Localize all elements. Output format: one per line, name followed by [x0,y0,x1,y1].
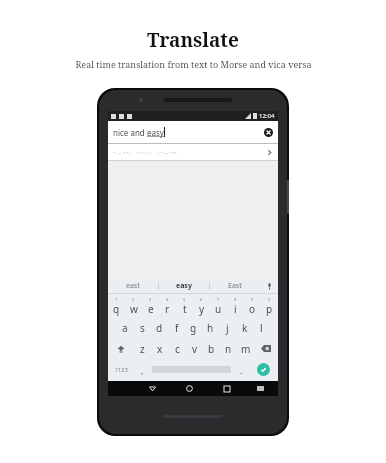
staticText: 4 [166,297,169,302]
button[interactable]: m [237,339,254,358]
staticText: p [266,302,273,316]
staticText: 9 [251,297,254,302]
button[interactable]: 3 [142,296,159,316]
staticText: 6 [200,297,203,302]
staticText: 1 [115,297,118,302]
staticText: 0 [268,297,271,302]
staticText: k [242,321,248,335]
button[interactable]: Home [171,381,208,396]
button[interactable]: z [133,339,151,358]
button[interactable]: x [151,339,169,358]
staticText: i [234,302,237,316]
staticText: g [190,321,197,335]
button[interactable]: j [219,318,236,337]
button[interactable]: easy [159,279,209,293]
button[interactable]: East [210,279,260,293]
staticText: 2 [132,297,135,302]
button[interactable]: 4 [159,296,176,316]
button[interactable]: 0 [261,296,278,316]
button[interactable]: l [253,318,270,337]
button[interactable]: 6 [193,296,210,316]
button[interactable]: Hide keyboard [245,381,275,396]
staticText: East [228,281,242,291]
button[interactable]: h [202,318,219,337]
button[interactable]: east [108,279,158,293]
button[interactable]: ?123 [108,360,134,379]
button[interactable]: d [151,318,168,337]
staticText: easy [176,281,192,291]
button[interactable]: Recent apps [208,381,245,396]
staticText: n [225,342,232,356]
button[interactable]: -. .. -.-. . .- -. -.. . .- ... -.-- [108,144,278,160]
staticText: Translate [147,27,239,53]
staticText: ?123 [115,366,128,374]
staticText: nice and [113,127,147,138]
staticText: a [122,321,128,335]
staticText: y [199,302,205,316]
staticText: u [215,302,222,316]
button[interactable]: Done [257,363,270,376]
staticText: z [140,342,145,356]
staticText: h [207,321,214,335]
button[interactable]: 1 [108,296,125,316]
button[interactable]: Backspace [254,339,278,358]
staticText: c [175,342,180,356]
button[interactable]: s [134,318,151,337]
button[interactable]: Clear text [264,128,273,137]
button[interactable]: Voice input [260,279,278,293]
button[interactable]: g [185,318,202,337]
button[interactable]: v [186,339,203,358]
staticText: 3 [149,297,152,302]
staticText: j [226,321,229,335]
button[interactable]: 7 [210,296,227,316]
staticText: east [126,281,140,291]
staticText: x [157,342,163,356]
staticText: l [260,321,263,335]
button[interactable]: Back [134,381,171,396]
staticText: 8 [234,297,237,302]
staticText: w [130,302,138,316]
button[interactable]: nice and [108,121,278,143]
button[interactable]: b [203,339,220,358]
button[interactable]: , [134,360,150,379]
button[interactable]: a [116,318,134,337]
staticText: . [240,364,243,376]
staticText: easy [147,127,164,138]
staticText: r [165,302,170,316]
staticText: b [208,342,215,356]
staticText: Real time translation from text to Morse… [75,58,312,70]
staticText: d [156,321,163,335]
button[interactable]: 2 [125,296,142,316]
staticText: o [249,302,256,316]
button[interactable]: . [233,360,249,379]
button[interactable]: 9 [244,296,261,316]
staticText: , [141,364,144,376]
button[interactable]: c [169,339,186,358]
button[interactable]: Shift [108,339,133,358]
staticText: 7 [217,297,220,302]
staticText: e [148,302,154,316]
button[interactable]: n [220,339,237,358]
button[interactable]: f [168,318,185,337]
staticText: q [113,302,120,316]
staticText: v [192,342,198,356]
staticText: 12:04 [259,112,275,120]
staticText: f [175,321,179,335]
staticText: s [140,321,145,335]
button[interactable]: 8 [227,296,244,316]
staticText: 5 [183,297,186,302]
button[interactable]: 5 [176,296,193,316]
staticText: m [241,342,251,356]
staticText: -. .. -.-. . .- -. -.. . .- ... -.-- [113,148,177,156]
staticText: t [183,302,187,316]
button[interactable]: k [236,318,253,337]
